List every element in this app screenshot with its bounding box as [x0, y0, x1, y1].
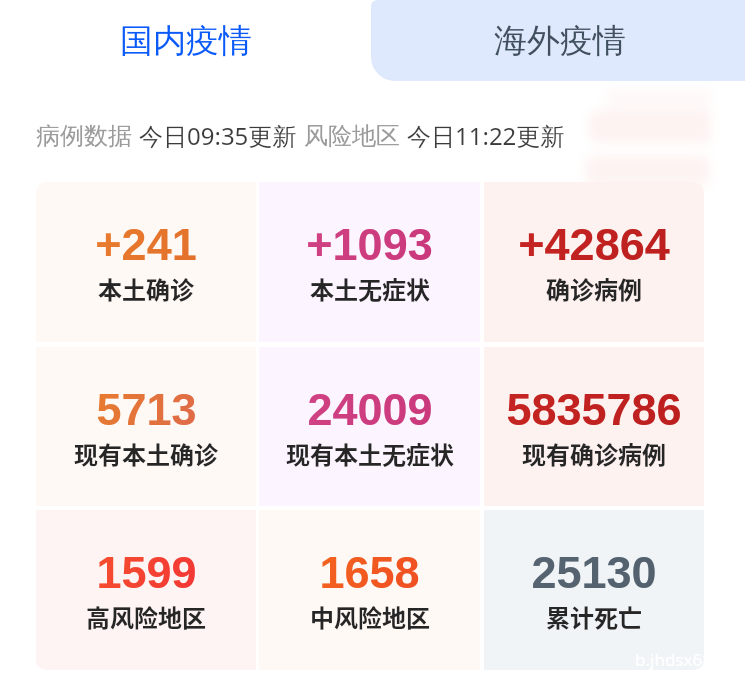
staticText: +241: [95, 219, 197, 269]
staticText: +1093: [306, 219, 433, 269]
staticText: 24009: [307, 384, 433, 434]
staticText: 现有本土无症状: [286, 436, 454, 471]
staticText: 25130: [531, 547, 657, 597]
button[interactable]: 5835786: [484, 347, 704, 506]
staticText: 确诊病例: [546, 271, 642, 306]
staticText: 1658: [319, 547, 420, 597]
button[interactable]: 海外疫情: [371, 0, 745, 81]
button[interactable]: 24009: [259, 347, 480, 506]
button[interactable]: 5713: [36, 347, 256, 506]
staticText: 今日11:22更新: [407, 119, 565, 152]
staticText: b.jhdsx68: [635, 648, 704, 670]
button[interactable]: +1093: [259, 182, 480, 342]
staticText: 今日09:35更新: [139, 119, 297, 152]
staticText: 国内疫情: [120, 20, 252, 62]
staticText: 中风险地区: [310, 599, 430, 634]
button[interactable]: +42864: [484, 182, 704, 342]
staticText: 累计死亡: [546, 599, 642, 634]
staticText: +42864: [518, 219, 670, 269]
staticText: 本土确诊: [98, 271, 194, 306]
button[interactable]: b.jhdsx68: [484, 510, 704, 670]
button[interactable]: +241: [36, 182, 256, 342]
staticText: 5835786: [506, 384, 682, 434]
button[interactable]: 国内疫情: [0, 0, 371, 81]
button[interactable]: 1658: [259, 510, 480, 670]
staticText: 海外疫情: [494, 20, 626, 62]
staticText: 1599: [96, 547, 197, 597]
staticText: 风险地区: [304, 121, 400, 151]
staticText: 现有本土确诊: [74, 436, 218, 471]
staticText: 高风险地区: [86, 599, 206, 634]
staticText: 病例数据: [36, 121, 132, 151]
button[interactable]: 1599: [36, 510, 256, 670]
staticText: 现有确诊病例: [522, 436, 666, 471]
staticText: 本土无症状: [310, 271, 430, 306]
staticText: 5713: [96, 384, 197, 434]
